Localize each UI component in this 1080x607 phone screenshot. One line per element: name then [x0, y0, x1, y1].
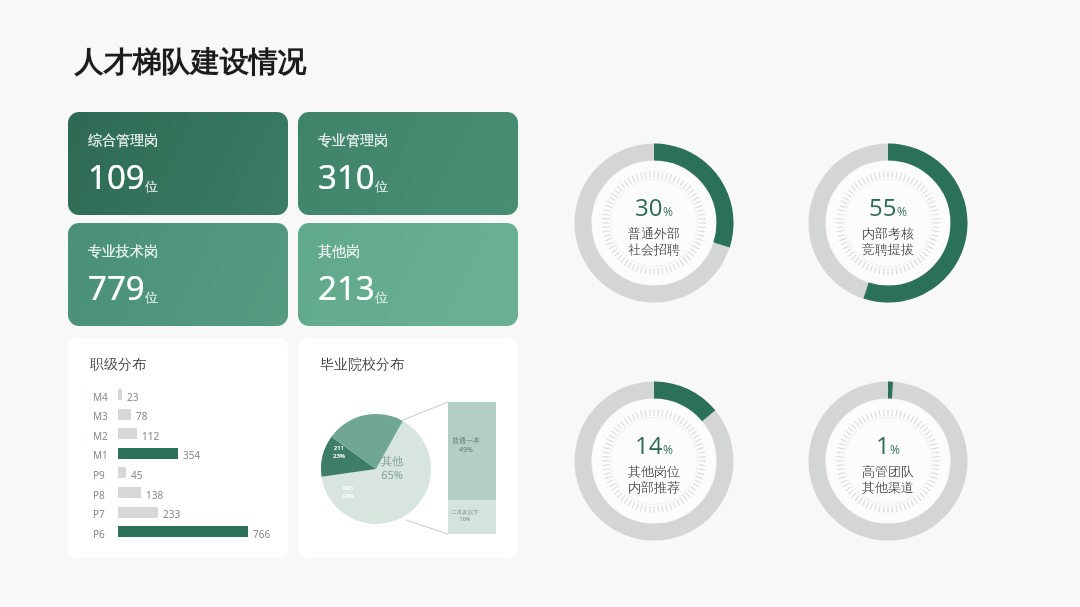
staticText: 其他岗位 [628, 463, 680, 479]
staticText: P8 [93, 488, 105, 502]
button[interactable]: 内部考核 竞聘提拔 55% [808, 143, 968, 303]
staticText: M2 [93, 429, 108, 443]
staticText: M4 [93, 390, 108, 404]
button[interactable]: 专业管理岗 [298, 112, 518, 215]
staticText: 779 [88, 265, 145, 310]
staticText: 普通外部 [628, 225, 680, 241]
staticText: 23 [127, 390, 139, 404]
staticText: 138 [146, 488, 164, 502]
staticText: 14 [635, 428, 663, 461]
button[interactable]: 毕业院校分布 [298, 338, 518, 558]
staticText: 二本及以下 16% [451, 509, 479, 523]
staticText: 竞聘提拔 [862, 241, 914, 257]
staticText: 112 [142, 429, 160, 443]
staticText: 普通一本 49% [452, 436, 480, 454]
staticText: 职级分布 [90, 356, 146, 374]
button[interactable]: 普通外部 社会招聘 30% [574, 143, 734, 303]
staticText: P6 [93, 527, 105, 541]
staticText: % [897, 203, 907, 219]
staticText: M1 [93, 448, 108, 462]
staticText: 78 [136, 409, 148, 423]
staticText: % [663, 203, 673, 219]
staticText: 专业管理岗 [318, 132, 388, 150]
staticText: 766 [253, 527, 271, 541]
button[interactable]: 其他岗位 内部推荐 14% [574, 381, 734, 541]
button[interactable]: 其他岗 [298, 223, 518, 326]
staticText: P7 [93, 507, 105, 521]
staticText: 位 [375, 289, 388, 305]
staticText: 其他岗 [318, 243, 360, 261]
button[interactable]: 职级分布 [68, 338, 288, 558]
staticText: 1 [876, 428, 890, 461]
staticText: % [663, 441, 673, 457]
button[interactable]: 专业技术岗 [68, 223, 288, 326]
staticText: M3 [93, 409, 108, 423]
staticText: 45 [131, 468, 143, 482]
staticText: 位 [145, 289, 158, 305]
staticText: % [890, 441, 900, 457]
staticText: 高管团队 [862, 463, 914, 479]
staticText: 310 [318, 154, 375, 199]
staticText: 354 [183, 448, 201, 462]
staticText: 专业技术岗 [88, 243, 158, 261]
staticText: 内部推荐 [628, 479, 680, 495]
staticText: 其他 65% [381, 454, 403, 482]
staticText: 位 [375, 178, 388, 194]
staticText: P9 [93, 468, 105, 482]
staticText: 其他渠道 [862, 479, 914, 495]
staticText: 233 [163, 507, 181, 521]
staticText: 综合管理岗 [88, 132, 158, 150]
staticText: 位 [145, 178, 158, 194]
staticText: 内部考核 [862, 225, 914, 241]
staticText: 55 [869, 190, 897, 223]
staticText: 109 [88, 154, 145, 199]
staticText: 985 12% [342, 484, 354, 500]
staticText: 30 [635, 190, 663, 223]
staticText: 社会招聘 [628, 241, 680, 257]
button[interactable]: 综合管理岗 [68, 112, 288, 215]
staticText: 211 23% [333, 444, 345, 460]
staticText: 毕业院校分布 [320, 356, 404, 374]
staticText: 213 [318, 265, 375, 310]
button[interactable]: 高管团队 其他渠道 1% [808, 381, 968, 541]
staticText: 人才梯队建设情况 [74, 44, 306, 81]
